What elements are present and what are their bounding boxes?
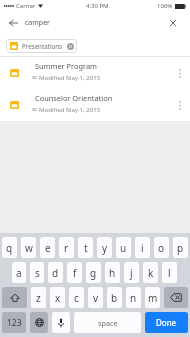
staticText: i [141, 241, 144, 255]
staticText: d [52, 266, 59, 280]
button[interactable]: More options [173, 98, 187, 112]
button[interactable]: space [74, 312, 141, 333]
staticText: x [55, 291, 61, 305]
staticText: o [158, 241, 165, 255]
staticText: p [177, 241, 184, 255]
staticText: space [98, 318, 118, 328]
button[interactable]: u [116, 237, 131, 258]
staticText: b [111, 291, 118, 305]
button[interactable]: x [50, 287, 65, 308]
button[interactable]: 123 [2, 312, 26, 333]
staticText: l [168, 266, 171, 280]
button[interactable]: n [126, 287, 141, 308]
button[interactable]: k [143, 262, 158, 283]
button[interactable]: a [12, 262, 26, 283]
button[interactable]: Dictation [52, 312, 70, 333]
staticText: j [130, 266, 133, 280]
staticText: Counselor Orientation [35, 93, 113, 103]
button[interactable]: z [31, 287, 46, 308]
button[interactable]: v [88, 287, 103, 308]
staticText: c [74, 291, 79, 305]
button[interactable]: p [173, 237, 188, 258]
button[interactable]: o [154, 237, 169, 258]
button[interactable]: i [135, 237, 150, 258]
button[interactable]: Counselor Orientation [0, 92, 190, 121]
button[interactable]: j [124, 262, 139, 283]
staticText: Summer Program [35, 61, 97, 71]
staticText: Done [156, 317, 177, 328]
staticText: f [73, 266, 77, 280]
button[interactable]: c [69, 287, 84, 308]
staticText: w [25, 241, 33, 255]
button[interactable]: Back [5, 15, 21, 31]
staticText: u [120, 241, 127, 255]
staticText: k [148, 266, 154, 280]
staticText: Presentations [22, 42, 63, 50]
button[interactable]: d [48, 262, 63, 283]
staticText: e [45, 241, 51, 255]
button[interactable]: h [105, 262, 120, 283]
button[interactable]: Backspace [164, 287, 188, 308]
button[interactable]: g [86, 262, 101, 283]
staticText: y [102, 241, 108, 255]
button[interactable]: e [40, 237, 55, 258]
button[interactable]: Summer Program [0, 57, 190, 92]
staticText: n [130, 291, 137, 305]
button[interactable]: Clear search [165, 15, 181, 31]
staticText: m [148, 291, 158, 305]
staticText: r [64, 241, 69, 255]
button[interactable]: Done [145, 312, 188, 333]
button[interactable]: Presentations [6, 39, 77, 53]
staticText: 4:30 PM [86, 2, 109, 10]
staticText: g [90, 266, 97, 280]
button[interactable]: q [2, 237, 17, 258]
button[interactable]: r [59, 237, 74, 258]
staticText: Carrier [16, 2, 36, 10]
button[interactable]: l [162, 262, 177, 283]
button[interactable]: b [107, 287, 122, 308]
staticText: q [6, 241, 13, 255]
staticText: camper [25, 18, 50, 28]
staticText: z [36, 291, 41, 305]
button[interactable]: m [145, 287, 160, 308]
button[interactable]: f [67, 262, 82, 283]
staticText: t [84, 241, 88, 255]
button[interactable]: Switch keyboard [30, 312, 48, 333]
button[interactable]: y [97, 237, 112, 258]
staticText: h [109, 266, 116, 280]
staticText: Modified May 1, 2015 [39, 73, 101, 81]
button[interactable]: s [30, 262, 44, 283]
button[interactable]: t [78, 237, 93, 258]
button[interactable]: Shift [2, 287, 27, 308]
staticText: v [93, 291, 99, 305]
staticText: 100% [157, 2, 173, 10]
button[interactable]: More options [173, 66, 187, 80]
staticText: a [16, 266, 22, 280]
staticText: s [35, 266, 40, 280]
staticText: Modified May 1, 2015 [39, 105, 101, 113]
button[interactable]: w [21, 237, 36, 258]
staticText: 123 [7, 317, 22, 329]
